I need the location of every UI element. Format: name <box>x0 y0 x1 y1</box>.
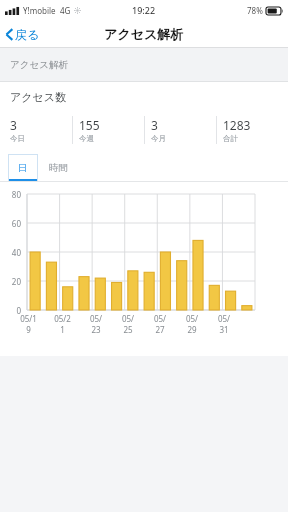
staticText: 戻る <box>15 27 40 42</box>
staticText: 05/21 <box>54 313 71 335</box>
staticText: 05/23 <box>88 313 104 335</box>
staticText: 60 <box>0 218 21 229</box>
staticText: 78% <box>247 5 263 16</box>
staticText: 19:22 <box>132 4 156 16</box>
staticText: 今日 <box>10 134 25 143</box>
staticText: 4G <box>60 5 71 16</box>
staticText: 今週 <box>79 134 94 143</box>
staticText: アクセス数 <box>10 90 67 104</box>
staticText: 0 <box>0 305 21 316</box>
staticText: アクセス解析 <box>10 59 68 71</box>
staticText: 05/31 <box>216 313 232 335</box>
staticText: 3 <box>151 117 158 133</box>
staticText: 05/19 <box>20 313 37 335</box>
staticText: 今月 <box>151 134 166 143</box>
button[interactable]: 日 <box>8 154 38 182</box>
staticText: 155 <box>79 117 100 133</box>
button[interactable]: 戻る <box>0 20 48 48</box>
staticText: 日 <box>18 162 28 174</box>
button[interactable]: 時間 <box>38 154 78 182</box>
staticText: Y!mobile <box>23 5 56 16</box>
staticText: アクセス解析 <box>104 26 184 42</box>
staticText: 05/27 <box>152 313 168 335</box>
staticText: 40 <box>0 247 21 258</box>
staticText: 合計 <box>223 134 238 143</box>
staticText: 時間 <box>49 162 68 174</box>
staticText: 1283 <box>223 117 251 133</box>
staticText: 05/29 <box>184 313 200 335</box>
staticText: 3 <box>10 117 17 133</box>
staticText: 20 <box>0 276 21 287</box>
staticText: 05/25 <box>120 313 136 335</box>
staticText: 80 <box>0 189 21 200</box>
